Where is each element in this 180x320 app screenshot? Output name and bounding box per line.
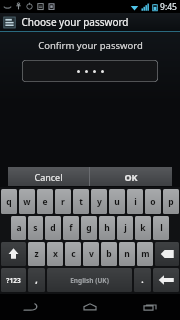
- staticText: b: [106, 248, 112, 260]
- button[interactable]: b: [101, 242, 117, 266]
- staticText: OK: [124, 171, 138, 183]
- button[interactable]: z: [28, 242, 45, 266]
- button[interactable]: [22, 60, 158, 82]
- button[interactable]: e: [37, 189, 53, 214]
- staticText: s: [33, 222, 38, 234]
- button[interactable]: m: [137, 242, 153, 266]
- staticText: l: [160, 222, 163, 234]
- button[interactable]: s: [28, 216, 43, 240]
- staticText: y: [97, 196, 102, 208]
- staticText: h: [104, 222, 110, 234]
- button[interactable]: q: [1, 189, 17, 214]
- staticText: k: [140, 222, 146, 234]
- button[interactable]: t: [73, 189, 89, 214]
- staticText: v: [89, 248, 94, 260]
- button[interactable]: u: [109, 189, 125, 214]
- button[interactable]: n: [119, 242, 135, 266]
- button[interactable]: Cancel: [8, 167, 89, 186]
- button[interactable]: p: [163, 189, 179, 214]
- button[interactable]: o: [145, 189, 161, 214]
- button[interactable]: Backspace: [155, 242, 179, 266]
- button[interactable]: i: [127, 189, 143, 214]
- staticText: z: [34, 248, 39, 260]
- button[interactable]: English (UK): [47, 268, 132, 292]
- button[interactable]: a: [11, 216, 26, 240]
- button[interactable]: w: [19, 189, 35, 214]
- staticText: ?123: [6, 276, 21, 285]
- staticText: Cancel: [34, 171, 63, 183]
- button[interactable]: l: [153, 216, 169, 240]
- staticText: r: [61, 196, 65, 208]
- button[interactable]: Shift: [1, 242, 26, 266]
- staticText: Choose your password: [21, 15, 129, 29]
- staticText: t: [79, 196, 83, 208]
- button[interactable]: OK: [90, 167, 172, 186]
- staticText: i: [134, 196, 137, 208]
- button[interactable]: x: [47, 242, 63, 266]
- staticText: English (UK): [70, 276, 109, 285]
- staticText: x: [53, 248, 58, 260]
- staticText: p: [168, 196, 174, 208]
- staticText: a: [16, 222, 22, 234]
- staticText: 9:45: [160, 1, 177, 13]
- button[interactable]: Back: [0, 294, 60, 320]
- staticText: j: [124, 222, 127, 234]
- button[interactable]: ,: [28, 268, 45, 292]
- button[interactable]: y: [91, 189, 107, 214]
- staticText: m: [141, 248, 150, 260]
- staticText: w: [23, 196, 31, 208]
- button[interactable]: f: [63, 216, 79, 240]
- staticText: Confirm your password: [38, 39, 143, 52]
- button[interactable]: j: [117, 216, 133, 240]
- button[interactable]: g: [81, 216, 97, 240]
- staticText: g: [86, 222, 92, 234]
- button[interactable]: .: [134, 268, 151, 292]
- staticText: ,: [35, 274, 38, 286]
- staticText: d: [50, 222, 56, 234]
- button[interactable]: r: [55, 189, 71, 214]
- staticText: n: [124, 248, 130, 260]
- staticText: f: [69, 222, 73, 234]
- staticText: .: [141, 274, 144, 286]
- button[interactable]: c: [65, 242, 81, 266]
- staticText: u: [114, 196, 120, 208]
- button[interactable]: ?123: [1, 268, 26, 292]
- staticText: c: [71, 248, 76, 260]
- button[interactable]: v: [83, 242, 99, 266]
- staticText: e: [42, 196, 48, 208]
- staticText: o: [150, 196, 156, 208]
- button[interactable]: Home: [60, 294, 120, 320]
- button[interactable]: d: [45, 216, 61, 240]
- button[interactable]: k: [135, 216, 151, 240]
- staticText: q: [6, 196, 12, 208]
- button[interactable]: Recents: [120, 294, 180, 320]
- button[interactable]: Enter: [153, 268, 179, 292]
- button[interactable]: h: [99, 216, 115, 240]
